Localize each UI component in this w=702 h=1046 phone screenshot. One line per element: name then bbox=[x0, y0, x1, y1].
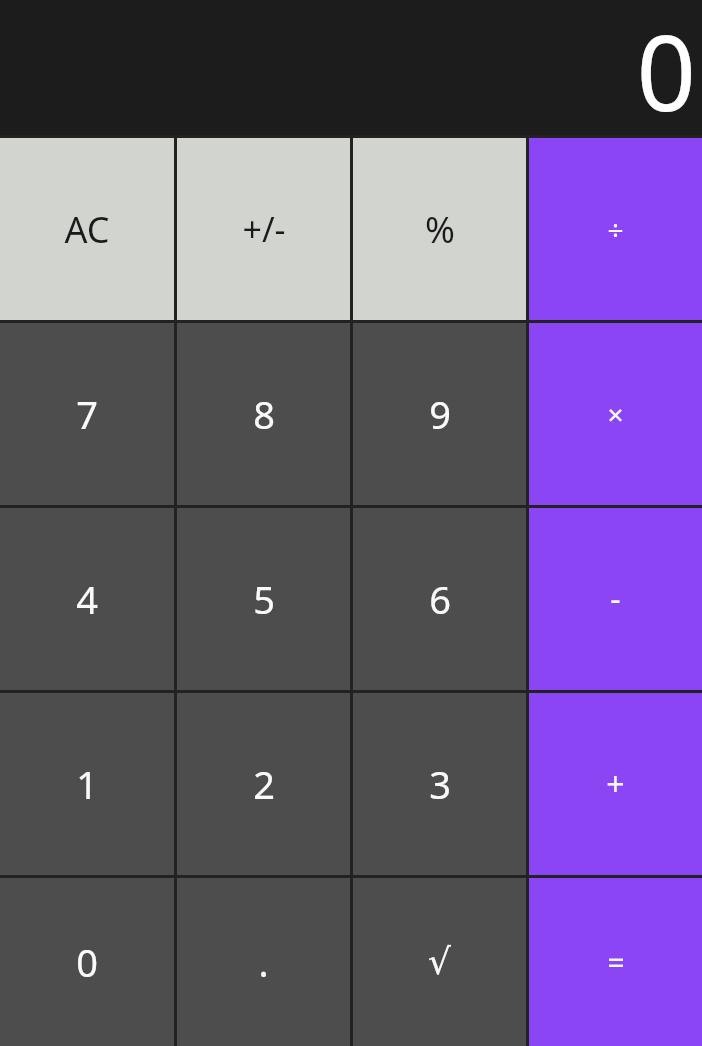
staticText: +/- bbox=[242, 206, 286, 252]
staticText: - bbox=[610, 577, 621, 621]
staticText: 0 bbox=[636, 0, 696, 135]
button[interactable]: Multiply bbox=[529, 323, 702, 505]
staticText: 4 bbox=[76, 573, 98, 625]
staticText: 1 bbox=[76, 758, 98, 810]
button[interactable]: Decimal point bbox=[177, 878, 350, 1046]
button[interactable]: 6 bbox=[353, 508, 526, 690]
button[interactable]: 9 bbox=[353, 323, 526, 505]
staticText: 2 bbox=[253, 758, 275, 810]
staticText: % bbox=[425, 205, 455, 254]
button[interactable]: 2 bbox=[177, 693, 350, 875]
button[interactable]: 3 bbox=[353, 693, 526, 875]
staticText: 9 bbox=[429, 388, 451, 440]
staticText: + bbox=[606, 762, 625, 806]
button[interactable]: Percent bbox=[353, 138, 526, 320]
button[interactable]: Add bbox=[529, 693, 702, 875]
button[interactable]: 5 bbox=[177, 508, 350, 690]
button[interactable]: Equals bbox=[529, 878, 702, 1046]
button[interactable]: Divide bbox=[529, 138, 702, 320]
staticText: 6 bbox=[429, 573, 451, 625]
button[interactable]: 1 bbox=[0, 693, 174, 875]
staticText: × bbox=[607, 395, 624, 433]
staticText: √ bbox=[428, 941, 451, 983]
button[interactable]: Toggle sign bbox=[177, 138, 350, 320]
staticText: 8 bbox=[253, 388, 275, 440]
button[interactable]: 0 bbox=[0, 878, 174, 1046]
button[interactable]: 7 bbox=[0, 323, 174, 505]
staticText: AC bbox=[64, 205, 110, 254]
button[interactable]: 4 bbox=[0, 508, 174, 690]
button[interactable]: Subtract bbox=[529, 508, 702, 690]
staticText: 7 bbox=[76, 388, 98, 440]
button[interactable]: 8 bbox=[177, 323, 350, 505]
button[interactable]: Square root bbox=[353, 878, 526, 1046]
staticText: = bbox=[607, 942, 625, 983]
button[interactable]: All clear bbox=[0, 138, 174, 320]
staticText: 3 bbox=[429, 758, 451, 810]
staticText: 0 bbox=[76, 936, 98, 988]
staticText: ÷ bbox=[607, 210, 624, 248]
staticText: . bbox=[258, 936, 269, 988]
staticText: 5 bbox=[253, 573, 275, 625]
